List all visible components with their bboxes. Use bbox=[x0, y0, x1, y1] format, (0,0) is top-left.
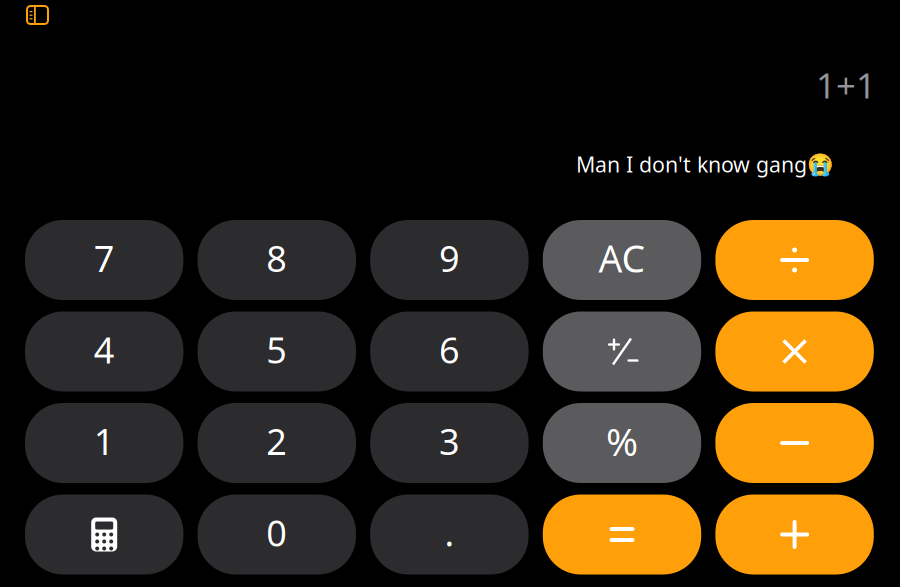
button[interactable]: 7 bbox=[25, 220, 183, 300]
button[interactable]: Divide bbox=[715, 220, 874, 300]
button[interactable]: 2 bbox=[198, 403, 356, 483]
button[interactable]: 4 bbox=[25, 311, 183, 391]
button[interactable]: 8 bbox=[198, 220, 356, 300]
button[interactable]: Toggle sign bbox=[543, 311, 701, 391]
staticText: 5 bbox=[266, 326, 287, 373]
button[interactable]: 6 bbox=[370, 311, 529, 391]
staticText: . bbox=[444, 509, 454, 556]
button[interactable]: Multiply bbox=[715, 311, 874, 391]
button[interactable]: Minus bbox=[715, 403, 874, 483]
button[interactable]: AC bbox=[543, 220, 701, 300]
staticText: Man I don't know gang😭 bbox=[576, 150, 834, 178]
button[interactable]: Equals bbox=[543, 494, 701, 574]
staticText: 4 bbox=[94, 326, 115, 373]
staticText: 2 bbox=[266, 417, 287, 465]
button[interactable]: . bbox=[370, 494, 529, 574]
staticText: 7 bbox=[94, 234, 115, 282]
button[interactable]: 9 bbox=[370, 220, 529, 300]
button[interactable]: Plus bbox=[715, 494, 874, 574]
staticText: 0 bbox=[266, 509, 287, 556]
staticText: 1+1 bbox=[816, 62, 876, 108]
staticText: % bbox=[606, 415, 638, 467]
staticText: 6 bbox=[439, 326, 460, 373]
staticText: 1 bbox=[94, 417, 115, 465]
button[interactable]: 3 bbox=[370, 403, 529, 483]
button[interactable]: Show history sidebar bbox=[0, 0, 58, 34]
button[interactable]: 1 bbox=[25, 403, 183, 483]
staticText: 3 bbox=[439, 417, 460, 465]
staticText: 8 bbox=[266, 234, 287, 282]
button[interactable]: Calculator mode bbox=[25, 494, 183, 574]
staticText: AC bbox=[598, 233, 645, 283]
button[interactable]: % bbox=[543, 403, 701, 483]
button[interactable]: 5 bbox=[198, 311, 356, 391]
staticText: 9 bbox=[439, 234, 460, 282]
button[interactable]: 0 bbox=[198, 494, 356, 574]
